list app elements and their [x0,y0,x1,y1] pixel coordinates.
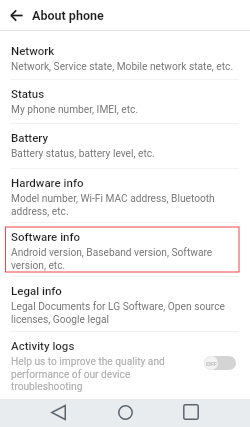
staticText: Android version, Baseband version, Softw… [11,247,239,271]
button[interactable]: Home [92,398,158,426]
staticText: Legal Documents for LG Software, Open so… [11,301,239,325]
staticText: About phone [32,8,104,23]
staticText: Model number, Wi-Fi MAC address, Bluetoo… [11,193,239,217]
staticText: Help us to improve the quality and perfo… [11,356,198,392]
staticText: Activity logs [11,339,75,352]
button[interactable]: Recent apps [158,398,224,426]
staticText: Network, Service state, Mobile network s… [11,61,234,73]
staticText: Legal info [11,284,62,297]
button[interactable]: Network [0,31,250,79]
staticText: OFF [206,360,217,367]
button[interactable]: Activity logs [0,332,250,399]
button[interactable]: Software info [0,223,250,276]
staticText: Hardware info [11,176,84,189]
button[interactable]: Status [0,80,250,123]
staticText: Software info [11,230,81,243]
button[interactable]: Activity logs toggle, off [204,356,236,370]
staticText: Battery status, battery level, etc. [11,148,155,160]
staticText: Battery [11,131,49,144]
staticText: Network [11,44,55,57]
button[interactable]: Back [25,398,91,426]
button[interactable]: Back [0,0,32,30]
staticText: Status [11,87,45,100]
button[interactable]: Battery [0,124,250,168]
staticText: My phone number, IMEI, etc. [11,104,139,116]
button[interactable]: Legal info [0,277,250,331]
button[interactable]: Hardware info [0,169,250,222]
